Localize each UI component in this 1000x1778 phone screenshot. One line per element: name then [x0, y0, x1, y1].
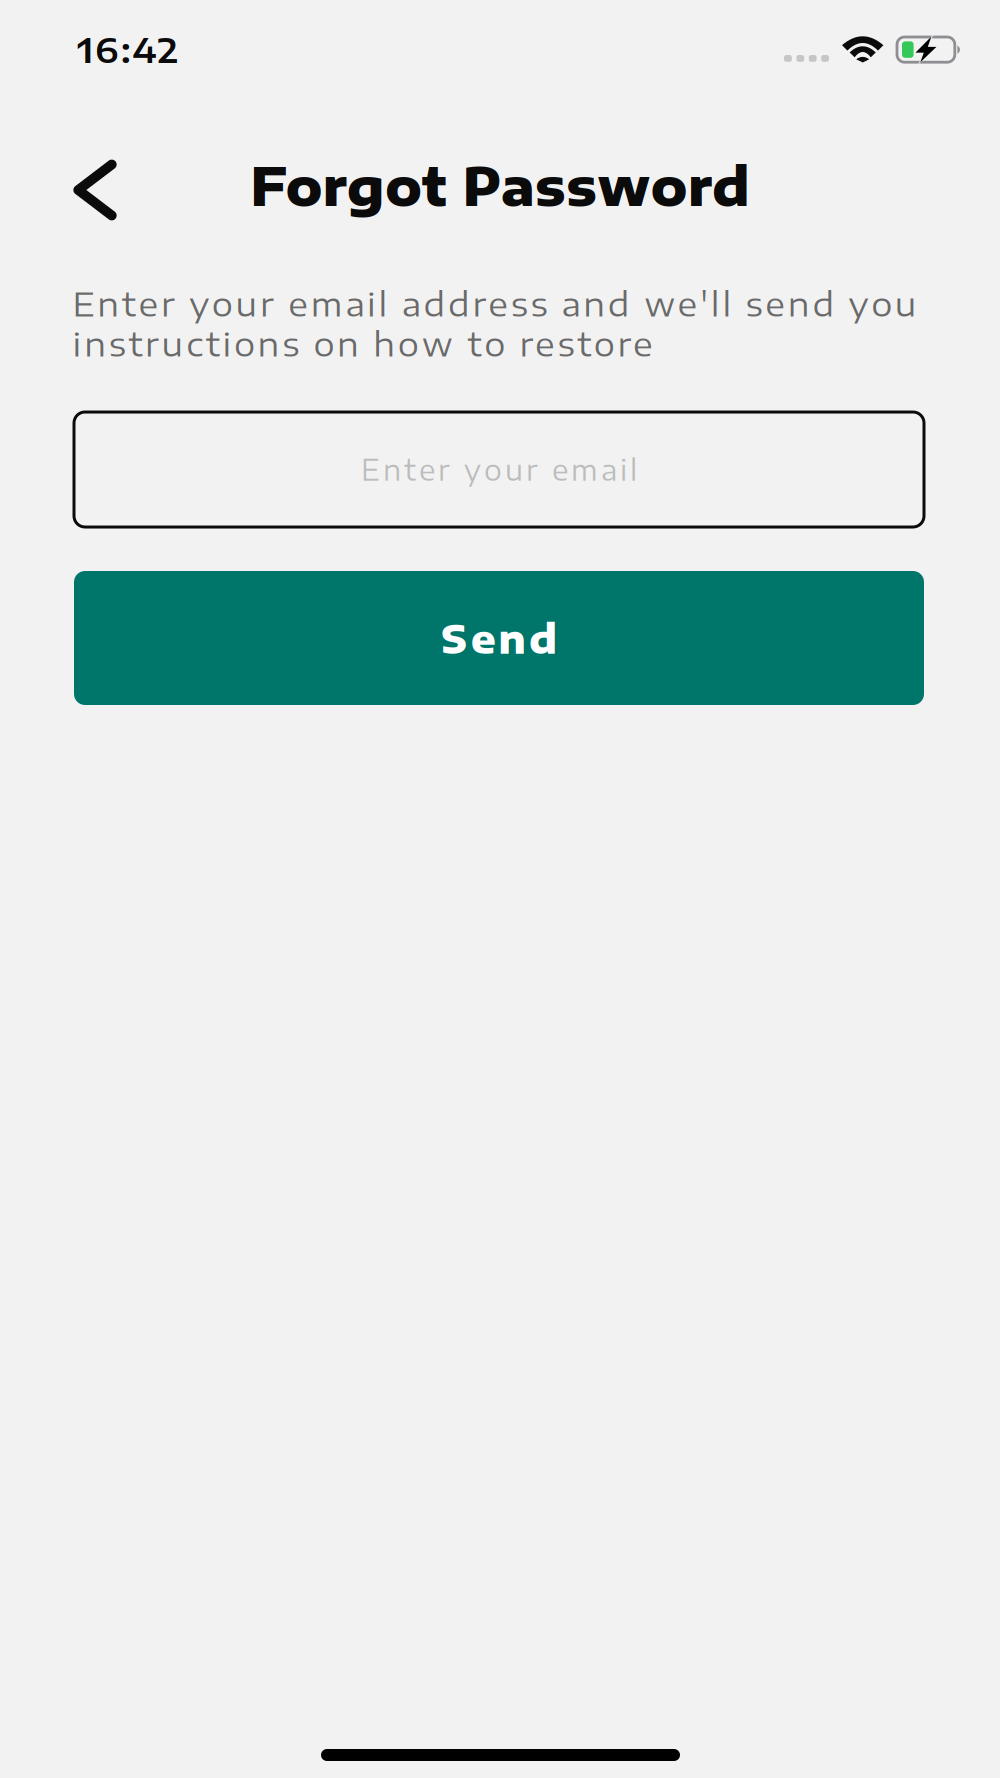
staticText: instructions on how to restore — [61, 322, 665, 364]
button[interactable]: Back — [43, 142, 147, 238]
staticText: Enter your email — [350, 452, 648, 487]
staticText: 16:42 — [65, 27, 190, 71]
staticText: Forgot Password — [235, 152, 765, 217]
button[interactable]: Send — [74, 571, 924, 705]
staticText: Enter your email address and we'll send … — [61, 282, 928, 324]
staticText: Send — [427, 614, 570, 662]
